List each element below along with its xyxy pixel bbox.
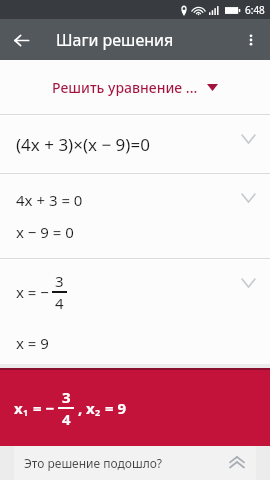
staticText: = 9 bbox=[101, 398, 126, 418]
staticText: 4 bbox=[55, 293, 64, 313]
button[interactable]: Это решение подошло? bbox=[14, 446, 256, 480]
button[interactable]: 4x + 3 = 0 bbox=[0, 174, 270, 258]
staticText: , bbox=[74, 398, 83, 418]
staticText: x = 9 bbox=[16, 333, 49, 353]
staticText: Это решение подошло? bbox=[24, 455, 163, 471]
staticText: 3 bbox=[55, 271, 64, 291]
staticText: 2 bbox=[95, 406, 101, 418]
button[interactable]: x = − bbox=[0, 259, 270, 364]
staticText: Шаги решения bbox=[56, 29, 174, 51]
button[interactable]: (4x + 3)×(x − 9)=0 bbox=[0, 115, 270, 173]
staticText: x bbox=[86, 398, 95, 418]
staticText: = − bbox=[29, 398, 55, 418]
button[interactable]: More options bbox=[236, 25, 266, 55]
staticText: 1 bbox=[23, 406, 29, 418]
staticText: Решить уравнение ... bbox=[52, 78, 198, 97]
staticText: 4 bbox=[62, 409, 71, 429]
staticText: 4x + 3 = 0 bbox=[16, 190, 83, 210]
button[interactable]: Решить уравнение ... bbox=[0, 60, 270, 114]
staticText: (4x + 3)×(x − 9)=0 bbox=[16, 133, 150, 156]
staticText: 6:48 bbox=[245, 3, 265, 17]
staticText: x bbox=[14, 398, 23, 418]
staticText: x = − bbox=[16, 282, 49, 302]
button[interactable]: x bbox=[0, 370, 270, 446]
staticText: 3 bbox=[62, 387, 71, 407]
button[interactable]: Back bbox=[6, 25, 36, 55]
staticText: x − 9 = 0 bbox=[16, 222, 74, 242]
